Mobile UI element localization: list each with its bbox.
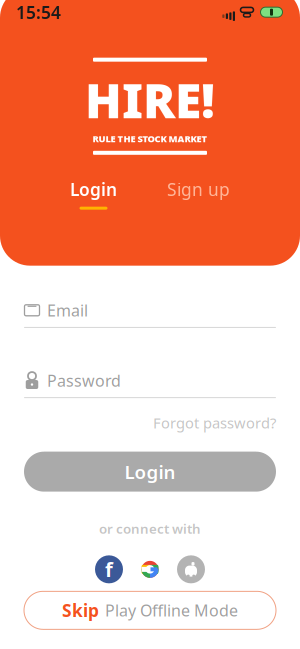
button[interactable]: Sign in with Facebook [95, 555, 123, 583]
button[interactable]: Login [24, 452, 276, 492]
staticText: Password [47, 370, 121, 391]
staticText: Skip [62, 599, 99, 622]
button[interactable]: Sign up [155, 174, 242, 214]
button[interactable]: Sign in with Google [136, 555, 164, 583]
staticText: Play Offline Mode [105, 600, 238, 621]
button[interactable]: Sign in with Apple [177, 555, 205, 583]
staticText: f [105, 556, 113, 583]
button[interactable]: Login [58, 174, 129, 214]
staticText: RULE THE STOCK MARKET [92, 132, 207, 145]
staticText: Login [124, 459, 175, 484]
staticText: Email [47, 300, 88, 321]
staticText: or connect with [99, 520, 201, 537]
button[interactable]: Skip [24, 591, 276, 629]
staticText: Sign up [167, 178, 230, 201]
staticText: 15:54 [16, 1, 61, 24]
staticText: Login [70, 178, 117, 201]
staticText: HIRE! [85, 68, 215, 131]
button[interactable]: Forgot password? [153, 410, 276, 436]
staticText: Forgot password? [153, 413, 276, 433]
